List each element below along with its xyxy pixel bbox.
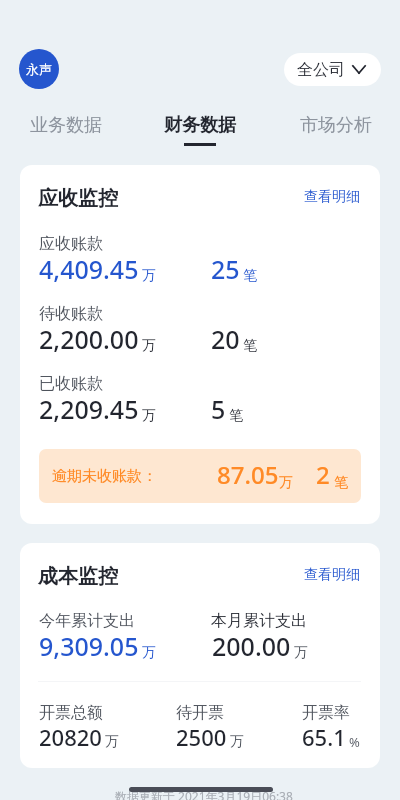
staticText: 万 [294, 644, 308, 662]
staticText: 财务数据 [164, 114, 236, 137]
staticText: 2,200.00 [39, 322, 139, 356]
staticText: 笔 [243, 267, 257, 285]
staticText: 5 [211, 392, 226, 426]
button[interactable]: 财务数据 [134, 98, 267, 148]
staticText: 2500 [176, 722, 227, 752]
staticText: 成本监控 [38, 564, 118, 589]
button[interactable]: Company logo 永声 [19, 49, 59, 89]
staticText: 已收账款 [39, 374, 103, 394]
staticText: 25 [211, 252, 240, 286]
staticText: 开票总额 [39, 703, 103, 723]
button[interactable]: 逾期未收账款： [39, 449, 361, 503]
staticText: 数据更新于 2021年3月19日06:38 [115, 788, 293, 800]
staticText: 万 [142, 267, 156, 285]
staticText: 永声 [26, 61, 52, 77]
staticText: 65.1 [302, 722, 346, 752]
staticText: 2,209.45 [39, 392, 139, 426]
staticText: 200.00 [212, 629, 291, 663]
staticText: 待收账款 [39, 304, 103, 324]
staticText: 87.05 [217, 458, 279, 491]
staticText: 4,409.45 [39, 252, 139, 286]
staticText: 本月累计支出 [211, 611, 307, 631]
staticText: 今年累计支出 [39, 611, 135, 631]
staticText: 全公司 [297, 60, 345, 80]
button[interactable]: 市场分析 [267, 98, 400, 148]
button[interactable]: 查看明细 [304, 566, 360, 584]
staticText: 开票率 [302, 703, 350, 723]
staticText: 逾期未收账款： [52, 467, 157, 486]
staticText: 笔 [229, 407, 243, 425]
staticText: 待开票 [176, 703, 224, 723]
staticText: 万 [230, 733, 244, 751]
staticText: 笔 [334, 474, 348, 492]
staticText: 应收监控 [38, 186, 118, 211]
button[interactable]: 全公司 [284, 53, 381, 86]
staticText: 2 [316, 458, 330, 491]
staticText: 笔 [243, 337, 257, 355]
staticText: 9,309.05 [39, 629, 139, 663]
staticText: 万 [142, 337, 156, 355]
staticText: 应收账款 [39, 234, 103, 254]
staticText: 20820 [39, 722, 102, 752]
staticText: 万 [105, 733, 119, 751]
staticText: 20 [211, 322, 240, 356]
staticText: 万 [142, 644, 156, 662]
staticText: 市场分析 [300, 114, 372, 137]
staticText: 万 [142, 407, 156, 425]
staticText: % [349, 733, 360, 751]
button[interactable]: 查看明细 [304, 188, 360, 206]
staticText: 万 [279, 474, 293, 492]
button[interactable]: 业务数据 [0, 98, 134, 148]
staticText: 业务数据 [30, 114, 102, 137]
